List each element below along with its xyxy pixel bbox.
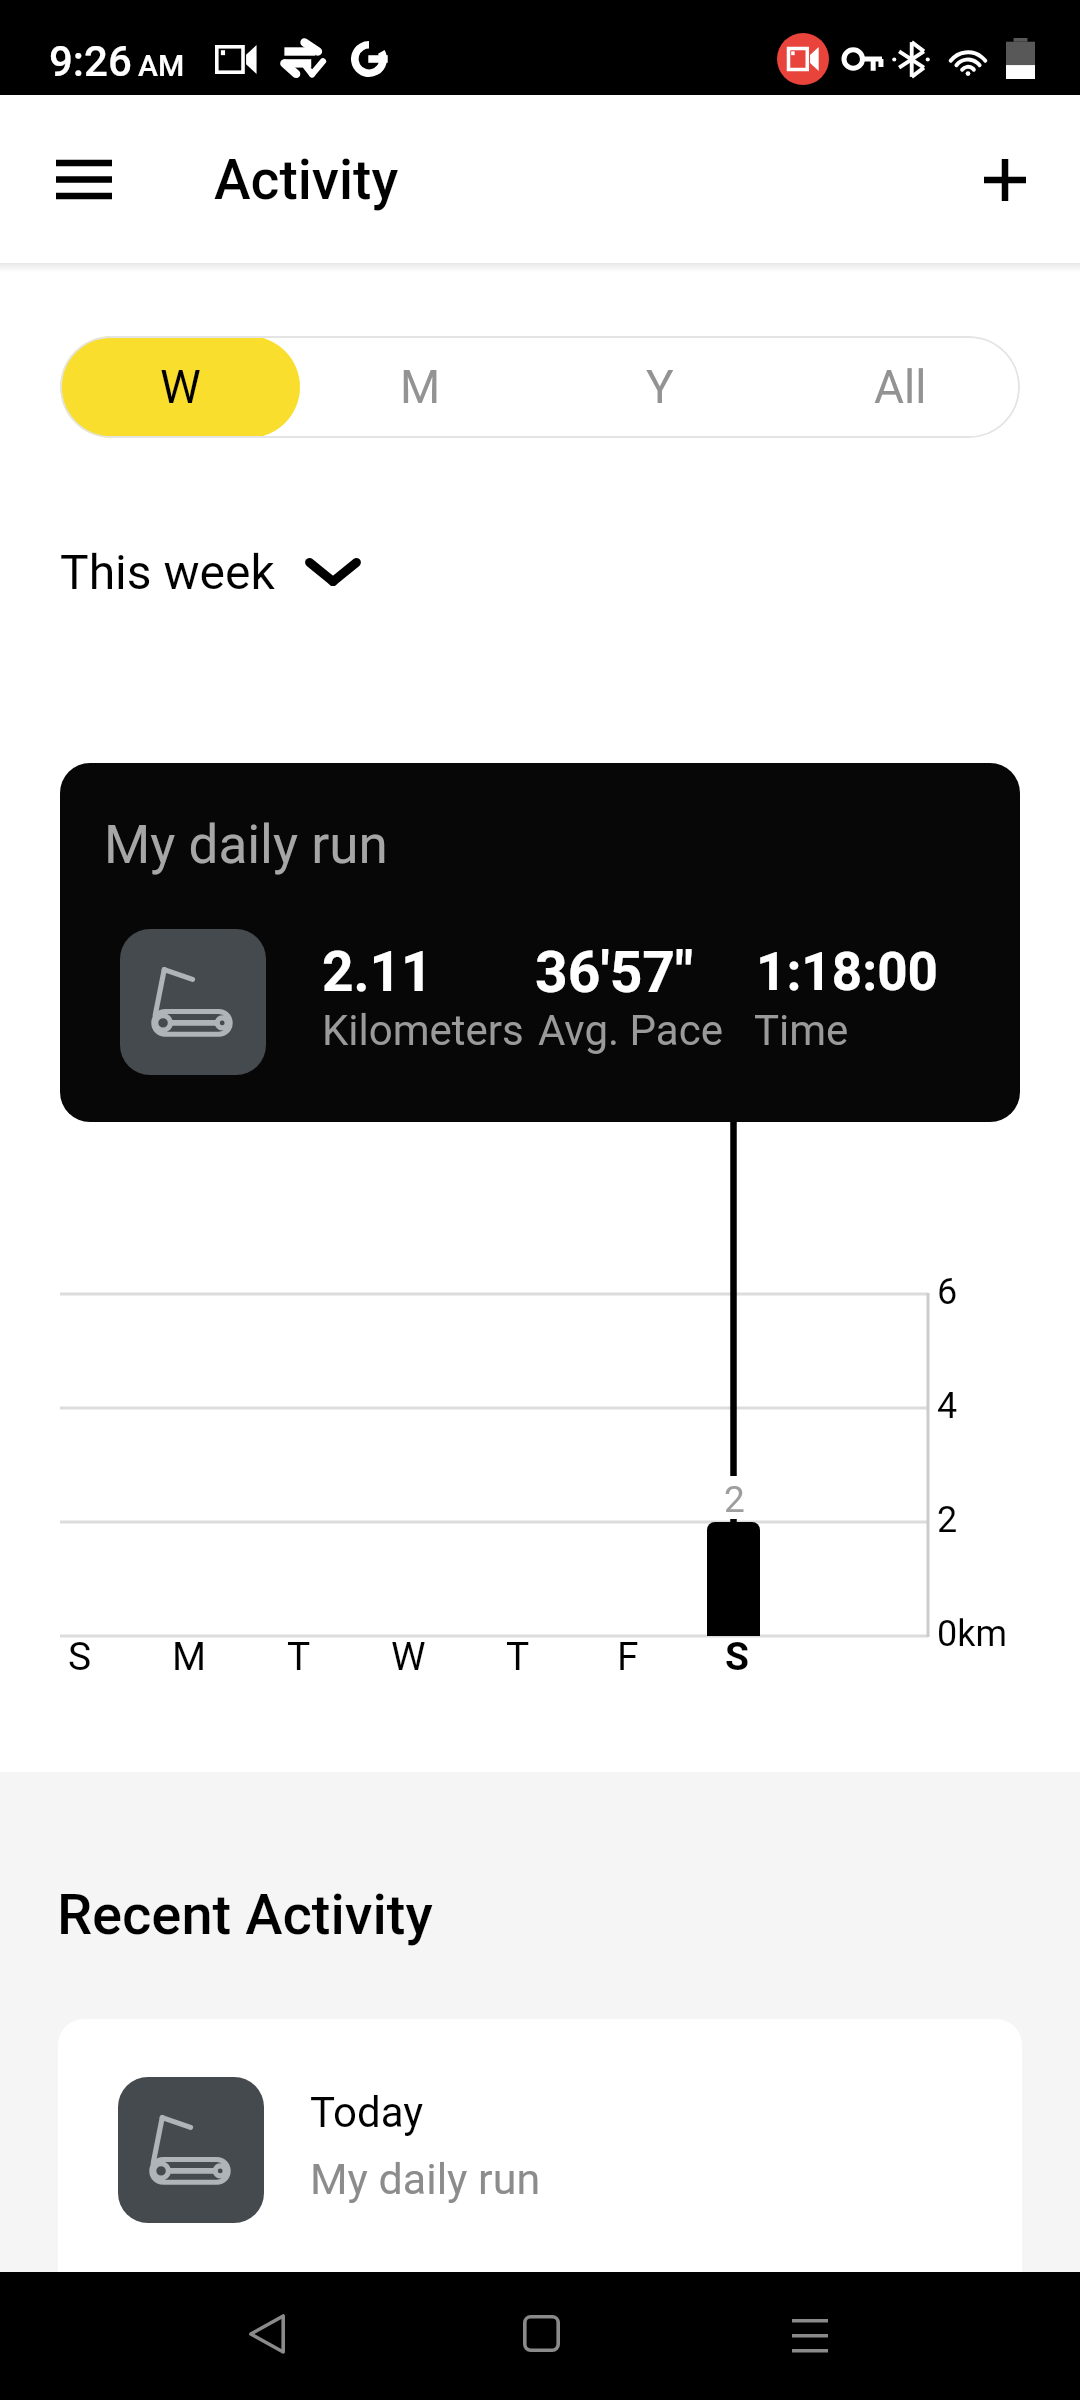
button[interactable]: My daily run	[60, 763, 1020, 1122]
staticText: 2.11	[322, 940, 433, 1004]
staticText: Recent Activity	[57, 1882, 433, 1948]
button[interactable]: M	[300, 336, 540, 438]
staticText: W	[160, 360, 201, 414]
staticText: Kilometers	[322, 1006, 524, 1055]
button[interactable]: Recent apps	[719, 2272, 901, 2400]
staticText: All	[874, 360, 927, 414]
staticText: 2	[724, 1478, 745, 1521]
staticText: S	[725, 1634, 749, 1680]
staticText: F	[617, 1634, 639, 1680]
staticText: 2	[937, 1499, 958, 1541]
staticText: 4	[937, 1385, 958, 1427]
button[interactable]: Home	[450, 2272, 632, 2400]
staticText: T	[506, 1634, 530, 1680]
staticText: Activity	[214, 148, 399, 212]
button[interactable]: Open navigation menu	[29, 125, 139, 235]
staticText: 9:26	[49, 37, 132, 86]
staticText: S	[68, 1634, 92, 1680]
button[interactable]: This week	[60, 530, 359, 614]
staticText: 36'57"	[535, 939, 694, 1006]
button[interactable]: All	[780, 336, 1020, 438]
button[interactable]: Add activity	[950, 125, 1060, 235]
staticText: T	[287, 1634, 311, 1680]
staticText: Avg. Pace	[538, 1006, 723, 1055]
staticText: Time	[754, 1006, 849, 1055]
staticText: W	[391, 1634, 426, 1680]
staticText: Today	[310, 2088, 424, 2137]
button[interactable]: Today	[58, 2019, 1022, 2272]
staticText: M	[172, 1634, 207, 1680]
button[interactable]: Y	[540, 336, 780, 438]
staticText: M	[400, 360, 441, 414]
staticText: My daily run	[104, 814, 388, 876]
button[interactable]: W	[60, 336, 300, 438]
staticText: My daily run	[310, 2154, 541, 2204]
button[interactable]: Back	[176, 2272, 358, 2400]
staticText: 6	[937, 1271, 958, 1313]
staticText: Y	[646, 360, 674, 414]
staticText: AM	[138, 48, 185, 83]
staticText: 1:18:00	[756, 941, 938, 1003]
staticText: 0km	[937, 1613, 1008, 1655]
staticText: This week	[60, 544, 275, 600]
